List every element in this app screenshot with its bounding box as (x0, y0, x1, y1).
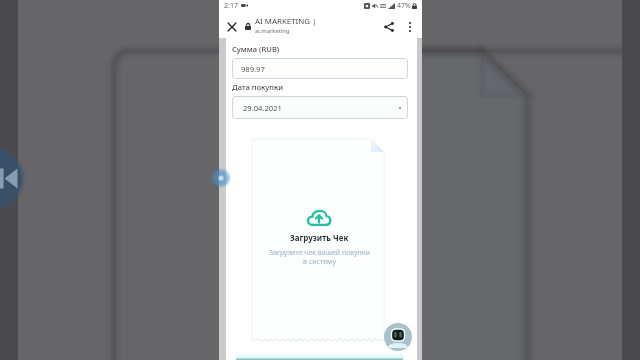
staticText: 29.04.2021 (243, 103, 282, 113)
staticText: 2:17 (224, 1, 238, 11)
staticText: Дата покупки (232, 82, 284, 92)
staticText: Загрузить Чек (290, 232, 349, 243)
staticText: AI MARKETING | (255, 16, 317, 27)
button[interactable]: Share (379, 17, 399, 37)
button[interactable]: Rewind (0, 146, 26, 211)
button[interactable]: Submit (236, 353, 403, 360)
button[interactable]: 29.04.2021 (232, 96, 408, 119)
staticText: ai.marketing (255, 27, 290, 35)
staticText: 47% (397, 1, 411, 11)
staticText: 989.97 (241, 64, 265, 74)
staticText: Загрузите чек вашей покупки в систему (269, 248, 370, 266)
button[interactable]: Chat bot (384, 323, 412, 351)
button[interactable]: 989.97 (232, 58, 408, 79)
button[interactable]: More options (401, 18, 419, 36)
staticText: Сумма (RUB) (232, 44, 280, 54)
button[interactable]: Close (223, 18, 240, 35)
button[interactable]: Seek backward (211, 168, 231, 188)
